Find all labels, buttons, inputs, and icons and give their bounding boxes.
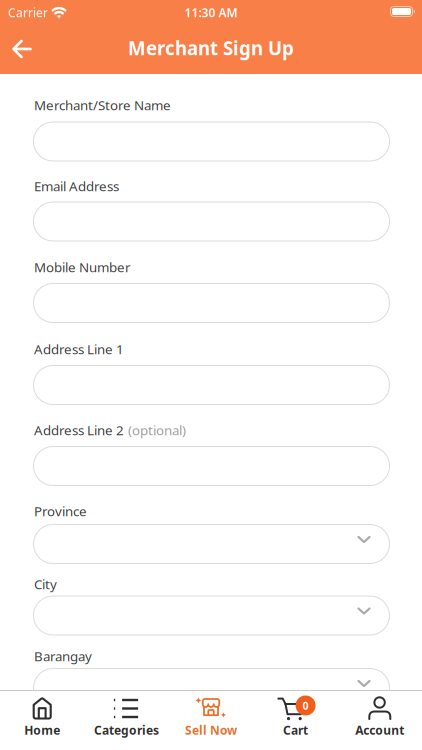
button[interactable]: Barangay (33, 668, 390, 708)
staticText: Mobile Number (34, 258, 131, 276)
staticText: Merchant/Store Name (34, 96, 171, 114)
button[interactable]: Province (33, 524, 390, 564)
button[interactable]: Categories (84, 691, 169, 749)
button[interactable]: City (33, 595, 390, 635)
button[interactable]: Back (4, 31, 40, 67)
staticText: Province (34, 502, 87, 520)
staticText: Account (355, 722, 404, 738)
staticText: 0 (303, 698, 309, 713)
button[interactable]: Mobile Number (33, 283, 390, 323)
button[interactable]: Address Line 2 (33, 446, 390, 486)
staticText: 11:30 AM (184, 4, 237, 20)
button[interactable]: Home (0, 691, 84, 749)
button[interactable]: Cart (253, 691, 338, 749)
staticText: City (34, 575, 57, 593)
button[interactable]: Account (338, 691, 422, 749)
staticText: (optional) (128, 421, 186, 439)
staticText: Address Line 1 (34, 340, 124, 358)
staticText: Barangay (34, 647, 92, 665)
button[interactable]: Sell Now (169, 691, 253, 749)
button[interactable]: Address Line 1 (33, 365, 390, 405)
staticText: Categories (94, 722, 159, 738)
staticText: Merchant Sign Up (128, 36, 294, 60)
button[interactable]: Merchant/Store Name (33, 121, 390, 161)
staticText: Email Address (34, 177, 119, 195)
staticText: Address Line 2 (34, 421, 124, 439)
staticText: Carrier (8, 4, 48, 20)
staticText: Cart (283, 722, 308, 738)
staticText: Home (24, 722, 60, 738)
button[interactable]: Email Address (33, 201, 390, 241)
staticText: Sell Now (185, 722, 237, 738)
